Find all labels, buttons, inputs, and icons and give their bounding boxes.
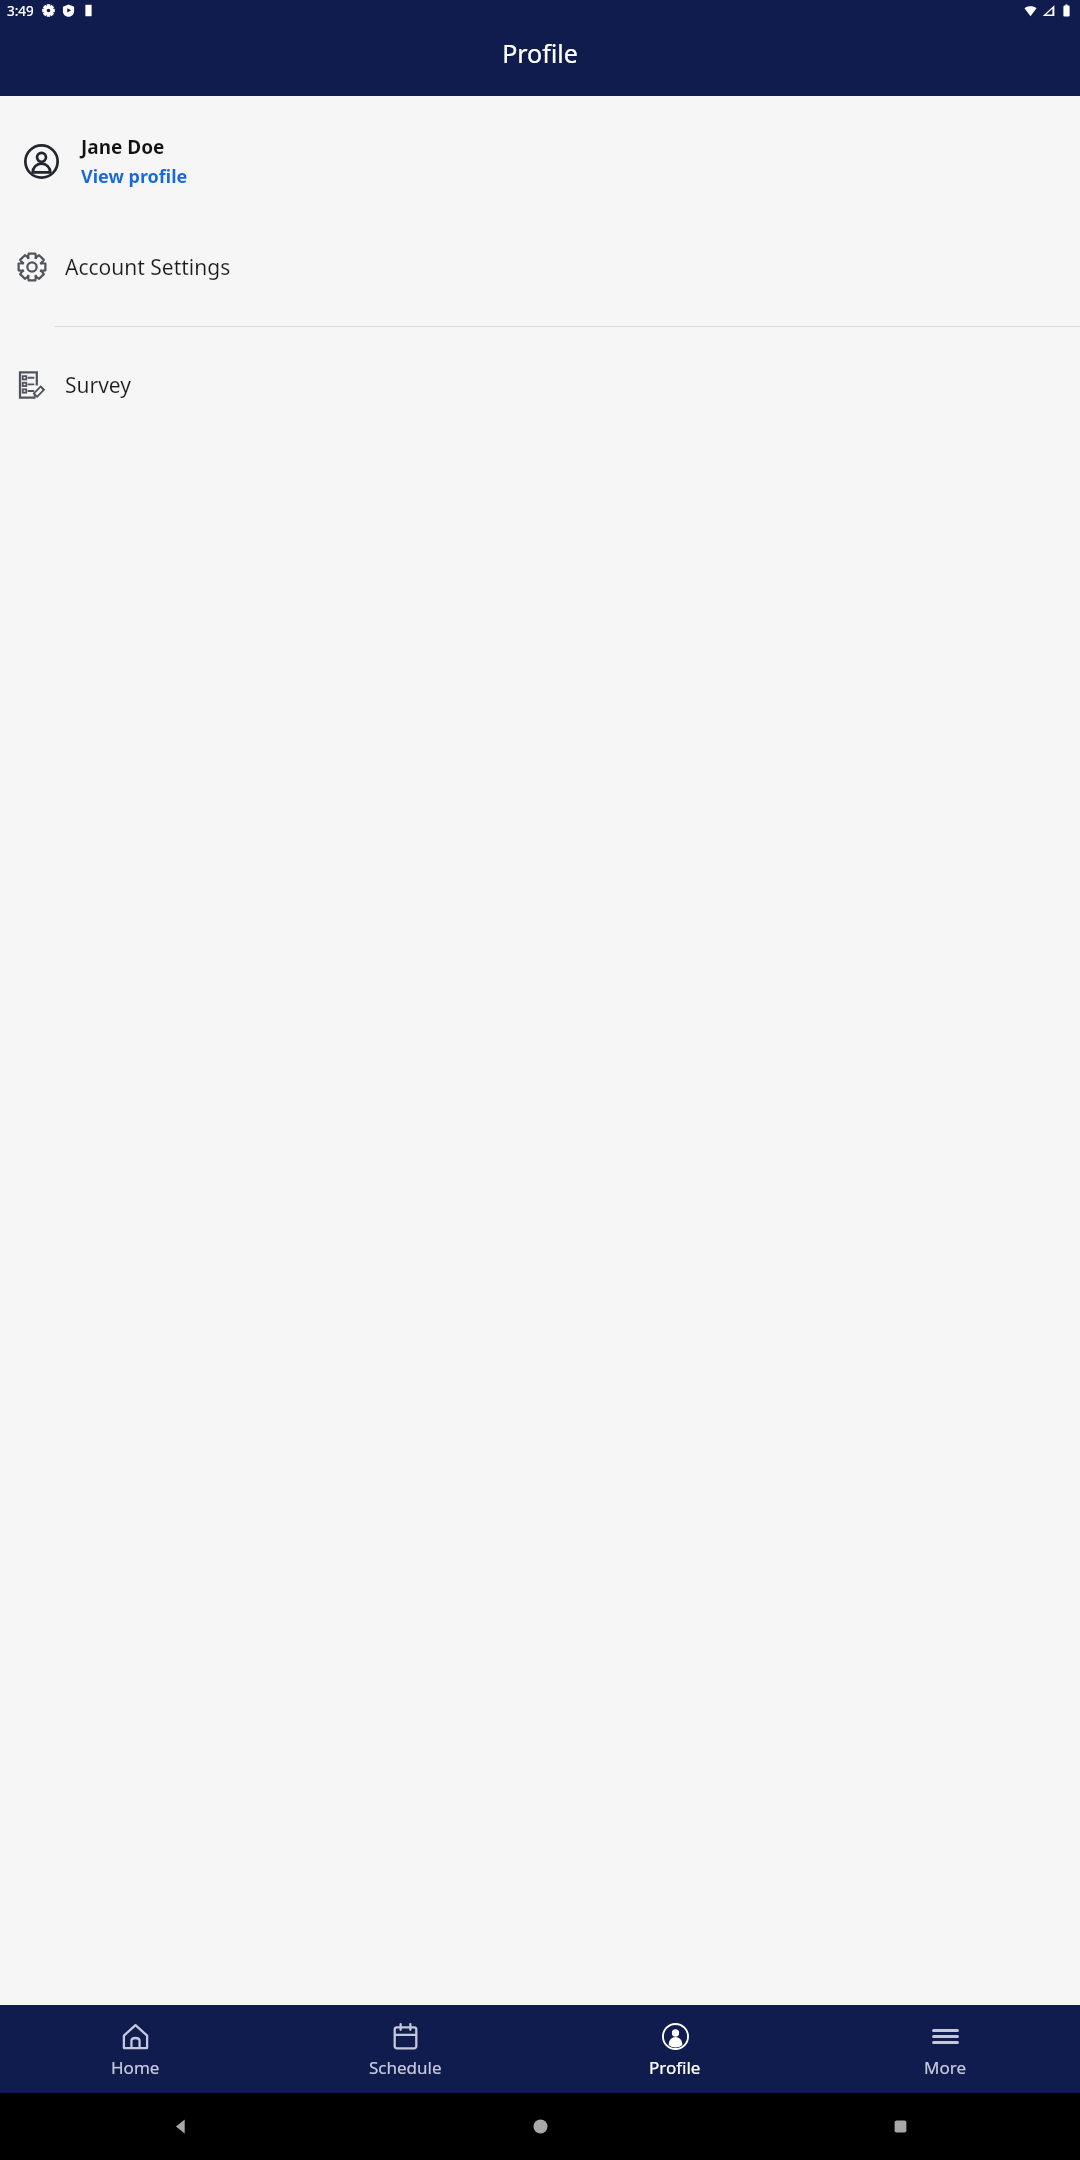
staticText: Profile <box>649 2056 701 2079</box>
staticText: Home <box>111 2056 160 2079</box>
button[interactable]: Home <box>0 2005 270 2093</box>
button[interactable]: Profile <box>540 2005 810 2093</box>
staticText: 3:49 <box>7 2 34 20</box>
staticText: View profile <box>81 164 188 189</box>
button[interactable]: Jane Doe <box>0 130 1080 193</box>
button[interactable]: Survey <box>0 348 1080 422</box>
staticText: Schedule <box>369 2056 442 2079</box>
other: Home <box>531 2117 550 2136</box>
other: Back <box>171 2117 190 2136</box>
staticText: Profile <box>502 36 578 70</box>
other: Recents <box>891 2117 910 2136</box>
staticText: Account Settings <box>65 253 231 282</box>
staticText: Survey <box>65 371 131 400</box>
button[interactable]: Schedule <box>270 2005 540 2093</box>
staticText: More <box>924 2056 966 2079</box>
button[interactable]: More <box>810 2005 1080 2093</box>
staticText: Jane Doe <box>81 134 165 160</box>
button[interactable]: Account Settings <box>0 230 1080 304</box>
